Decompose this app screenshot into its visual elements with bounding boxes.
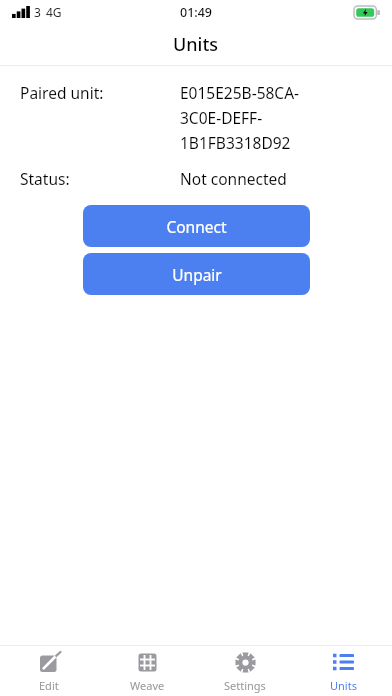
button[interactable]: Settings xyxy=(196,650,294,693)
button[interactable]: Edit xyxy=(0,650,98,693)
button[interactable]: Unpair xyxy=(83,253,310,295)
staticText: Units xyxy=(173,32,219,57)
staticText: Edit xyxy=(39,678,59,693)
button[interactable]: Weave xyxy=(98,650,196,693)
staticText: Connect xyxy=(166,216,227,237)
staticText: E015E25B-58CA- xyxy=(180,82,300,103)
button[interactable]: Units xyxy=(294,650,392,693)
button[interactable]: Connect xyxy=(83,205,310,247)
staticText: Units xyxy=(330,678,357,693)
staticText: Unpair xyxy=(172,264,222,285)
staticText: 3 xyxy=(34,4,41,20)
staticText: Settings xyxy=(224,678,266,693)
staticText: Not connected xyxy=(180,168,287,189)
staticText: 3C0E-DEFF- xyxy=(180,107,263,128)
staticText: Status: xyxy=(20,168,70,189)
staticText: Paired unit: xyxy=(20,82,104,103)
staticText: 01:49 xyxy=(180,4,213,21)
staticText: 1B1FB3318D92 xyxy=(180,132,291,153)
staticText: 4G xyxy=(46,4,62,20)
staticText: Weave xyxy=(130,678,165,693)
